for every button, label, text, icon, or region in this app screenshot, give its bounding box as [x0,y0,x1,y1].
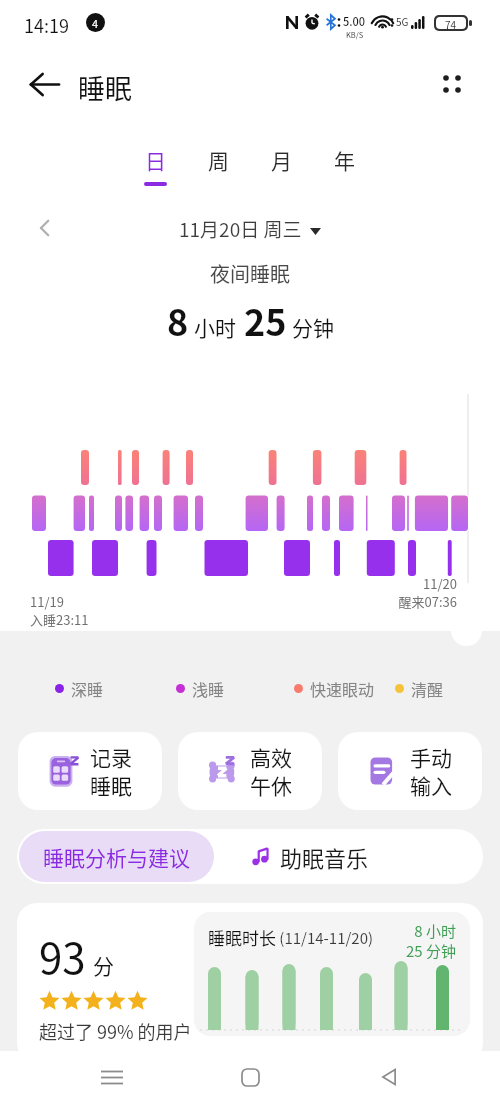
staticText: 清醒 [411,677,444,700]
staticText: 11/19 入睡23:11 [30,592,89,629]
staticText: 助眠音乐 [280,841,369,873]
staticText: 手动 输入 [410,742,452,800]
staticText: 分 [93,950,114,980]
staticText: 小时 [194,312,236,342]
button[interactable]: More options [430,62,474,106]
staticText: 74 [445,17,457,29]
staticText: 14:19 [24,12,69,38]
staticText: 超过了 99% 的用户 [39,1018,192,1044]
button[interactable]: 93 [17,903,483,1063]
staticText: 5.00 [343,13,366,29]
staticText: 夜间睡眠 [210,259,290,288]
staticText: KB/S [346,29,364,40]
staticText: 分钟 [292,312,334,342]
staticText: 8 小时 25 分钟 [392,920,456,961]
button[interactable]: 浅睡 [176,677,225,700]
button[interactable]: Previous day [28,211,62,245]
staticText: 年 [334,145,355,175]
staticText: 睡眠 [78,68,132,107]
button[interactable]: 日 [124,145,187,193]
staticText: 日 [145,145,166,175]
staticText: 11月20日 周三 [179,215,302,243]
button[interactable]: 记录 睡眠 [18,732,162,810]
button[interactable]: 手动 输入 [338,732,482,810]
button[interactable]: 睡眠分析与建议 [19,831,214,882]
button[interactable]: 快速眼动 [294,677,375,700]
button[interactable]: 清醒 [395,677,444,700]
button[interactable]: Recents [85,1051,139,1103]
staticText: 月 [271,145,292,175]
staticText: 4 [92,15,99,31]
button[interactable]: 助眠音乐 [252,829,369,884]
staticText: 快速眼动 [310,677,375,700]
staticText: 浅睡 [192,677,225,700]
button[interactable]: 高效 午休 [178,732,322,810]
staticText: 周 [208,145,229,175]
staticText: 高效 午休 [250,742,292,800]
button[interactable]: Back [362,1051,416,1103]
button[interactable]: 年 [313,145,376,193]
staticText: 11/20 醒来07:36 [398,574,457,611]
button[interactable]: 深睡 [55,677,104,700]
staticText: (11/14-11/20) [276,927,374,949]
staticText: 睡眠时长 [208,925,276,950]
button[interactable]: Back [22,62,66,106]
staticText: 25 [244,294,287,346]
button[interactable]: Home [223,1051,277,1103]
staticText: 深睡 [71,677,104,700]
button[interactable]: 周 [187,145,250,193]
staticText: 记录 睡眠 [90,742,132,800]
staticText: 5G [396,14,409,28]
staticText: 93 [39,925,86,986]
staticText: 睡眠分析与建议 [43,842,190,872]
button[interactable]: 月 [250,145,313,193]
button[interactable]: Expand [451,615,482,646]
staticText: 8 [167,294,189,346]
